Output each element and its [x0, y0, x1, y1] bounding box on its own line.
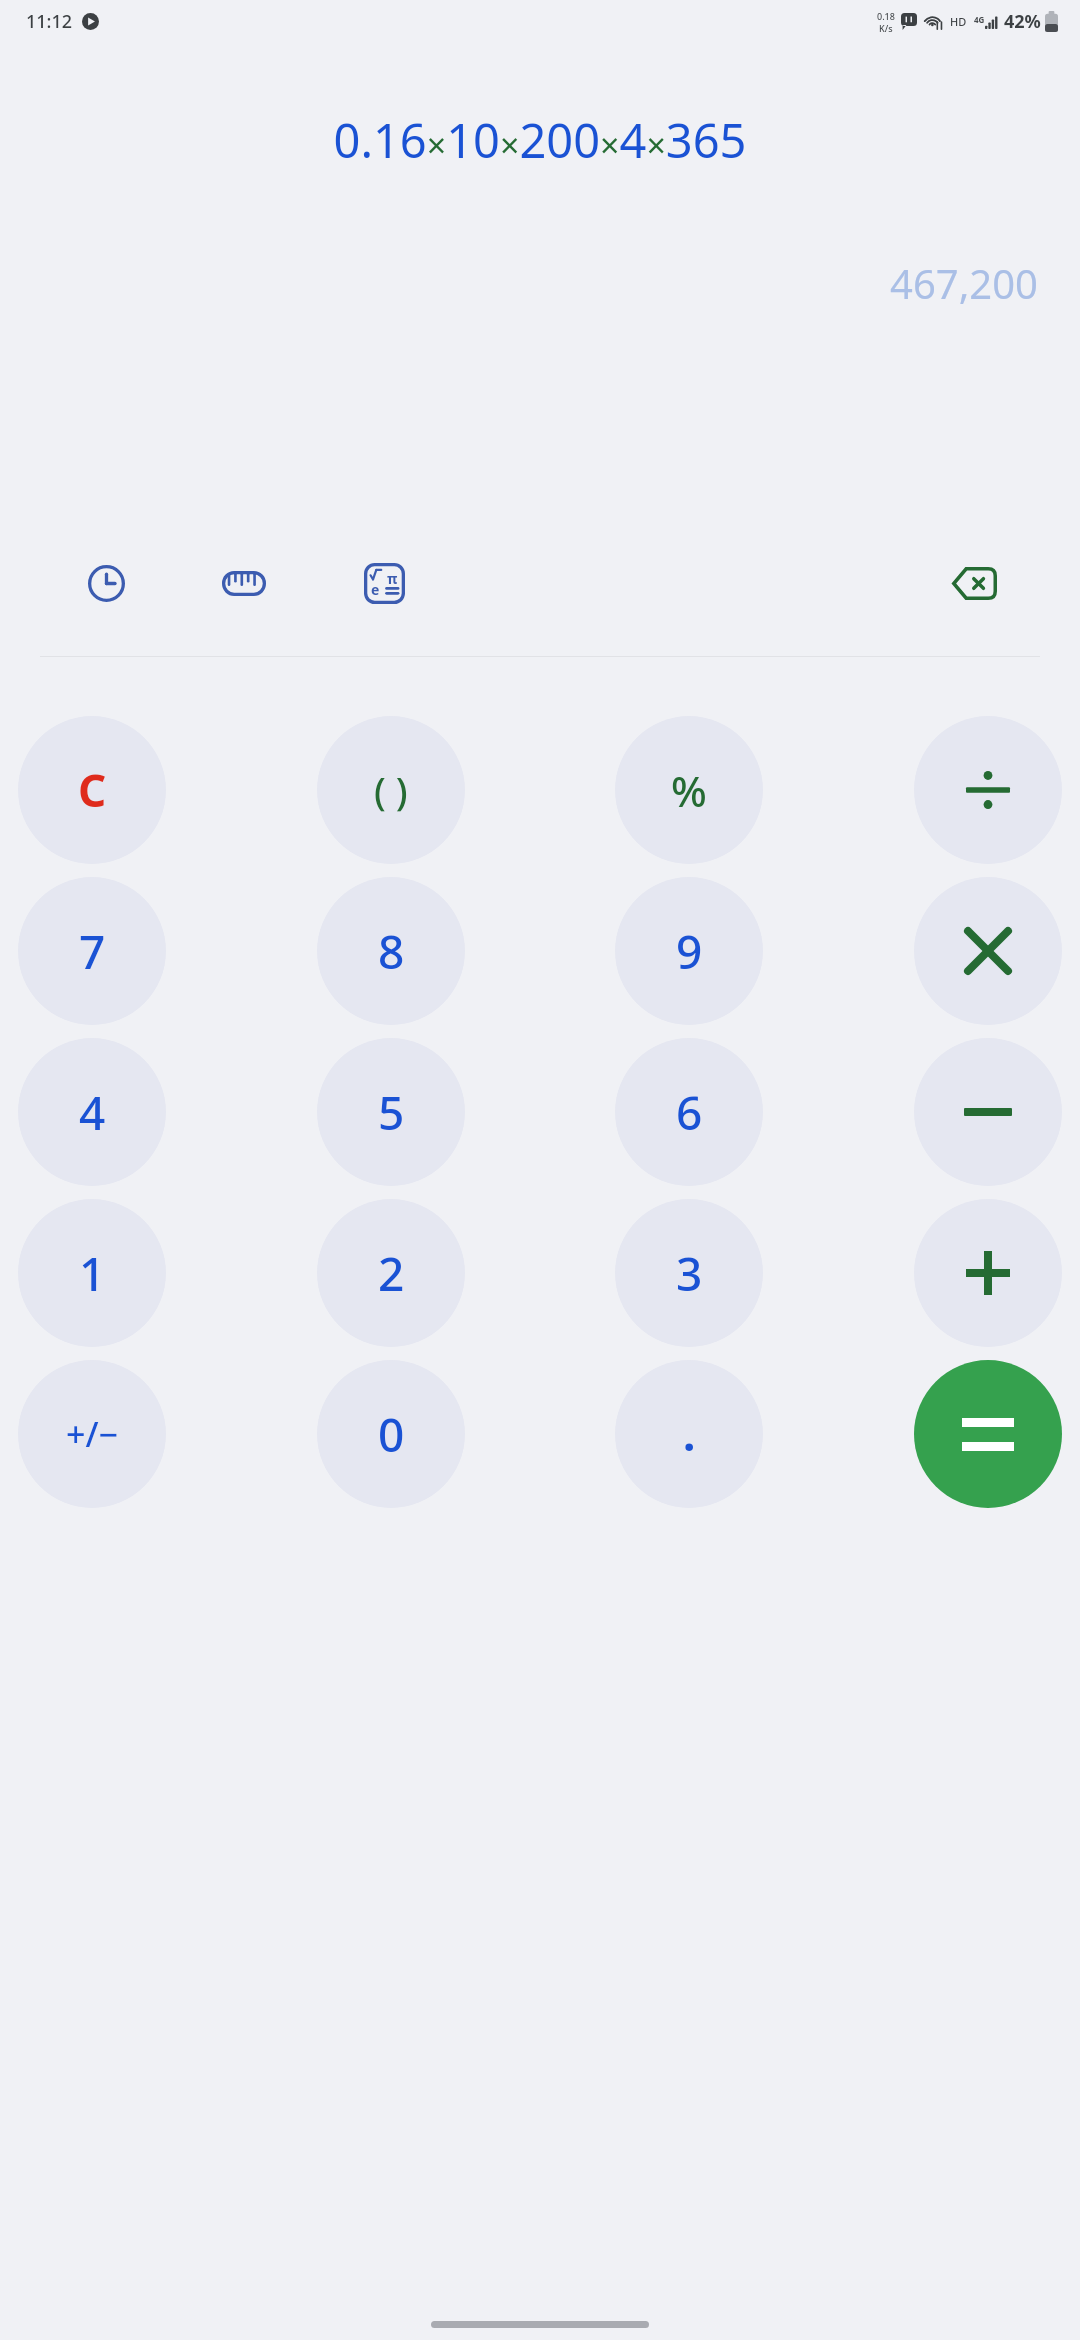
- button[interactable]: 9: [615, 877, 763, 1025]
- button[interactable]: 7: [18, 877, 166, 1025]
- button[interactable]: 0: [317, 1360, 465, 1508]
- staticText: 5: [378, 1081, 405, 1144]
- button[interactable]: Equals: [914, 1360, 1062, 1508]
- button[interactable]: ( ): [317, 716, 465, 864]
- staticText: %: [671, 762, 707, 819]
- staticText: 3: [676, 1242, 703, 1305]
- staticText: π: [387, 569, 398, 588]
- staticText: 0.16×10×200×4×365: [14, 108, 1066, 172]
- button[interactable]: .: [615, 1360, 763, 1508]
- staticText: e: [371, 580, 380, 599]
- button[interactable]: 3: [615, 1199, 763, 1347]
- staticText: K/s: [879, 22, 893, 34]
- button[interactable]: Divide: [914, 716, 1062, 864]
- staticText: C: [78, 760, 107, 820]
- staticText: 467,200: [0, 256, 1038, 310]
- staticText: 6: [676, 1081, 703, 1144]
- button[interactable]: Backspace: [946, 555, 1002, 611]
- button[interactable]: Subtract: [914, 1038, 1062, 1186]
- button[interactable]: 5: [317, 1038, 465, 1186]
- staticText: +/−: [66, 1411, 119, 1457]
- button[interactable]: 6: [615, 1038, 763, 1186]
- button[interactable]: 2: [317, 1199, 465, 1347]
- staticText: 4: [79, 1081, 106, 1144]
- button[interactable]: %: [615, 716, 763, 864]
- staticText: HD: [950, 14, 967, 29]
- button[interactable]: Scientific: [356, 555, 412, 611]
- button[interactable]: Unit converter: [216, 555, 272, 611]
- button[interactable]: 1: [18, 1199, 166, 1347]
- button[interactable]: History: [78, 555, 134, 611]
- staticText: 2: [378, 1242, 405, 1305]
- staticText: ( ): [374, 764, 408, 816]
- button[interactable]: C: [18, 716, 166, 864]
- staticText: 9: [676, 920, 703, 983]
- staticText: 42%: [1004, 9, 1041, 34]
- staticText: .: [683, 1404, 696, 1464]
- staticText: 7: [79, 920, 106, 983]
- staticText: 0: [378, 1403, 405, 1466]
- staticText: 11:12: [26, 9, 73, 34]
- staticText: 1: [79, 1242, 106, 1305]
- button[interactable]: 4: [18, 1038, 166, 1186]
- staticText: 0.18: [877, 10, 895, 22]
- button[interactable]: 8: [317, 877, 465, 1025]
- button[interactable]: Multiply: [914, 877, 1062, 1025]
- staticText: 8: [378, 920, 405, 983]
- button[interactable]: Add: [914, 1199, 1062, 1347]
- button[interactable]: +/−: [18, 1360, 166, 1508]
- staticText: 4G: [974, 14, 985, 25]
